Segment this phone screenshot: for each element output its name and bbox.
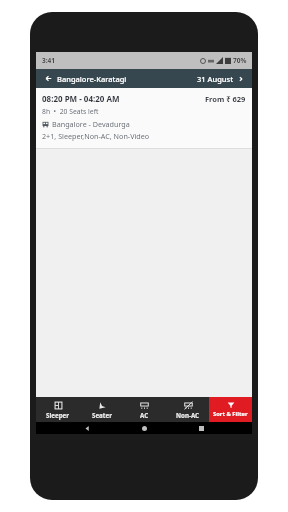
staticText: 3:41 [42, 56, 55, 65]
button[interactable]: 08:20 PM - 04:20 AM [36, 88, 252, 148]
staticText: 08:20 PM - 04:20 AM [42, 93, 120, 104]
button[interactable]: Seater [80, 397, 123, 422]
button[interactable]: 31 August [195, 74, 246, 84]
button[interactable]: Back [42, 72, 55, 85]
staticText: Sort & Filter [213, 410, 248, 418]
button[interactable]: Sleeper [36, 397, 80, 422]
staticText: 31 August [197, 74, 234, 84]
button[interactable]: Non-AC [166, 397, 209, 422]
staticText: 2+1, Sleeper,Non-AC, Non-Video [42, 131, 150, 141]
button[interactable]: AC [123, 397, 166, 422]
staticText: 70% [233, 56, 247, 65]
button[interactable]: Back [81, 422, 93, 434]
staticText: Bangalore - Devadurga [52, 119, 130, 129]
staticText: Non-AC [176, 411, 200, 419]
staticText: 8h • 20 Seats left [42, 107, 99, 116]
button[interactable]: Home [138, 422, 150, 434]
staticText: Seater [92, 411, 112, 419]
staticText: From ₹ 629 [205, 94, 246, 104]
button[interactable]: Sort & Filter [209, 397, 252, 422]
staticText: AC [140, 411, 149, 419]
staticText: Bangalore-Karatagi [57, 74, 127, 84]
staticText: Sleeper [46, 411, 70, 419]
button[interactable]: Recents [195, 422, 207, 434]
